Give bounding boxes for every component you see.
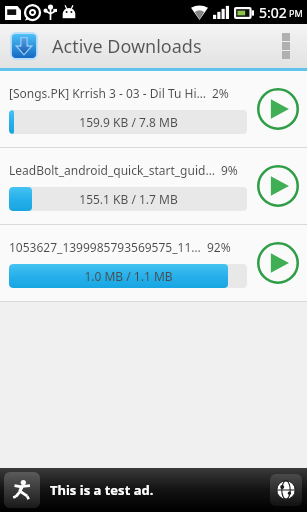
- staticText: [Songs.PK] Krrish 3 - 03 - Dil Tu Hi…: [9, 85, 206, 101]
- button[interactable]: Resume download: [251, 159, 305, 213]
- staticText: Active Downloads: [52, 34, 202, 59]
- staticText: 155.1 KB / 1.7 MB: [79, 191, 178, 207]
- button[interactable]: Advertiser: [0, 468, 307, 512]
- button[interactable]: Advertiser: [4, 472, 40, 508]
- button[interactable]: App icon: [10, 32, 38, 60]
- button[interactable]: [Songs.PK] Krrish 3 - 03 - Dil Tu Hi…: [0, 71, 307, 147]
- staticText: 159.9 KB / 7.8 MB: [79, 114, 178, 130]
- staticText: 5:02: [259, 3, 287, 22]
- staticText: 92%: [207, 239, 231, 255]
- button[interactable]: Open in browser: [270, 474, 302, 506]
- staticText: LeadBolt_android_quick_start_guid…: [9, 162, 215, 178]
- staticText: 1053627_1399985793569575_11…: [9, 239, 201, 255]
- staticText: 9%: [221, 162, 238, 178]
- button[interactable]: Resume download: [251, 82, 305, 136]
- staticText: 2%: [212, 85, 229, 101]
- staticText: PM: [289, 7, 303, 19]
- button[interactable]: LeadBolt_android_quick_start_guid…: [0, 148, 307, 224]
- button[interactable]: 1053627_1399985793569575_11…: [0, 225, 307, 301]
- staticText: 1.0 MB / 1.1 MB: [84, 268, 173, 284]
- button[interactable]: More options: [269, 24, 303, 68]
- button[interactable]: Resume download: [251, 236, 305, 290]
- staticText: This is a test ad.: [50, 481, 154, 499]
